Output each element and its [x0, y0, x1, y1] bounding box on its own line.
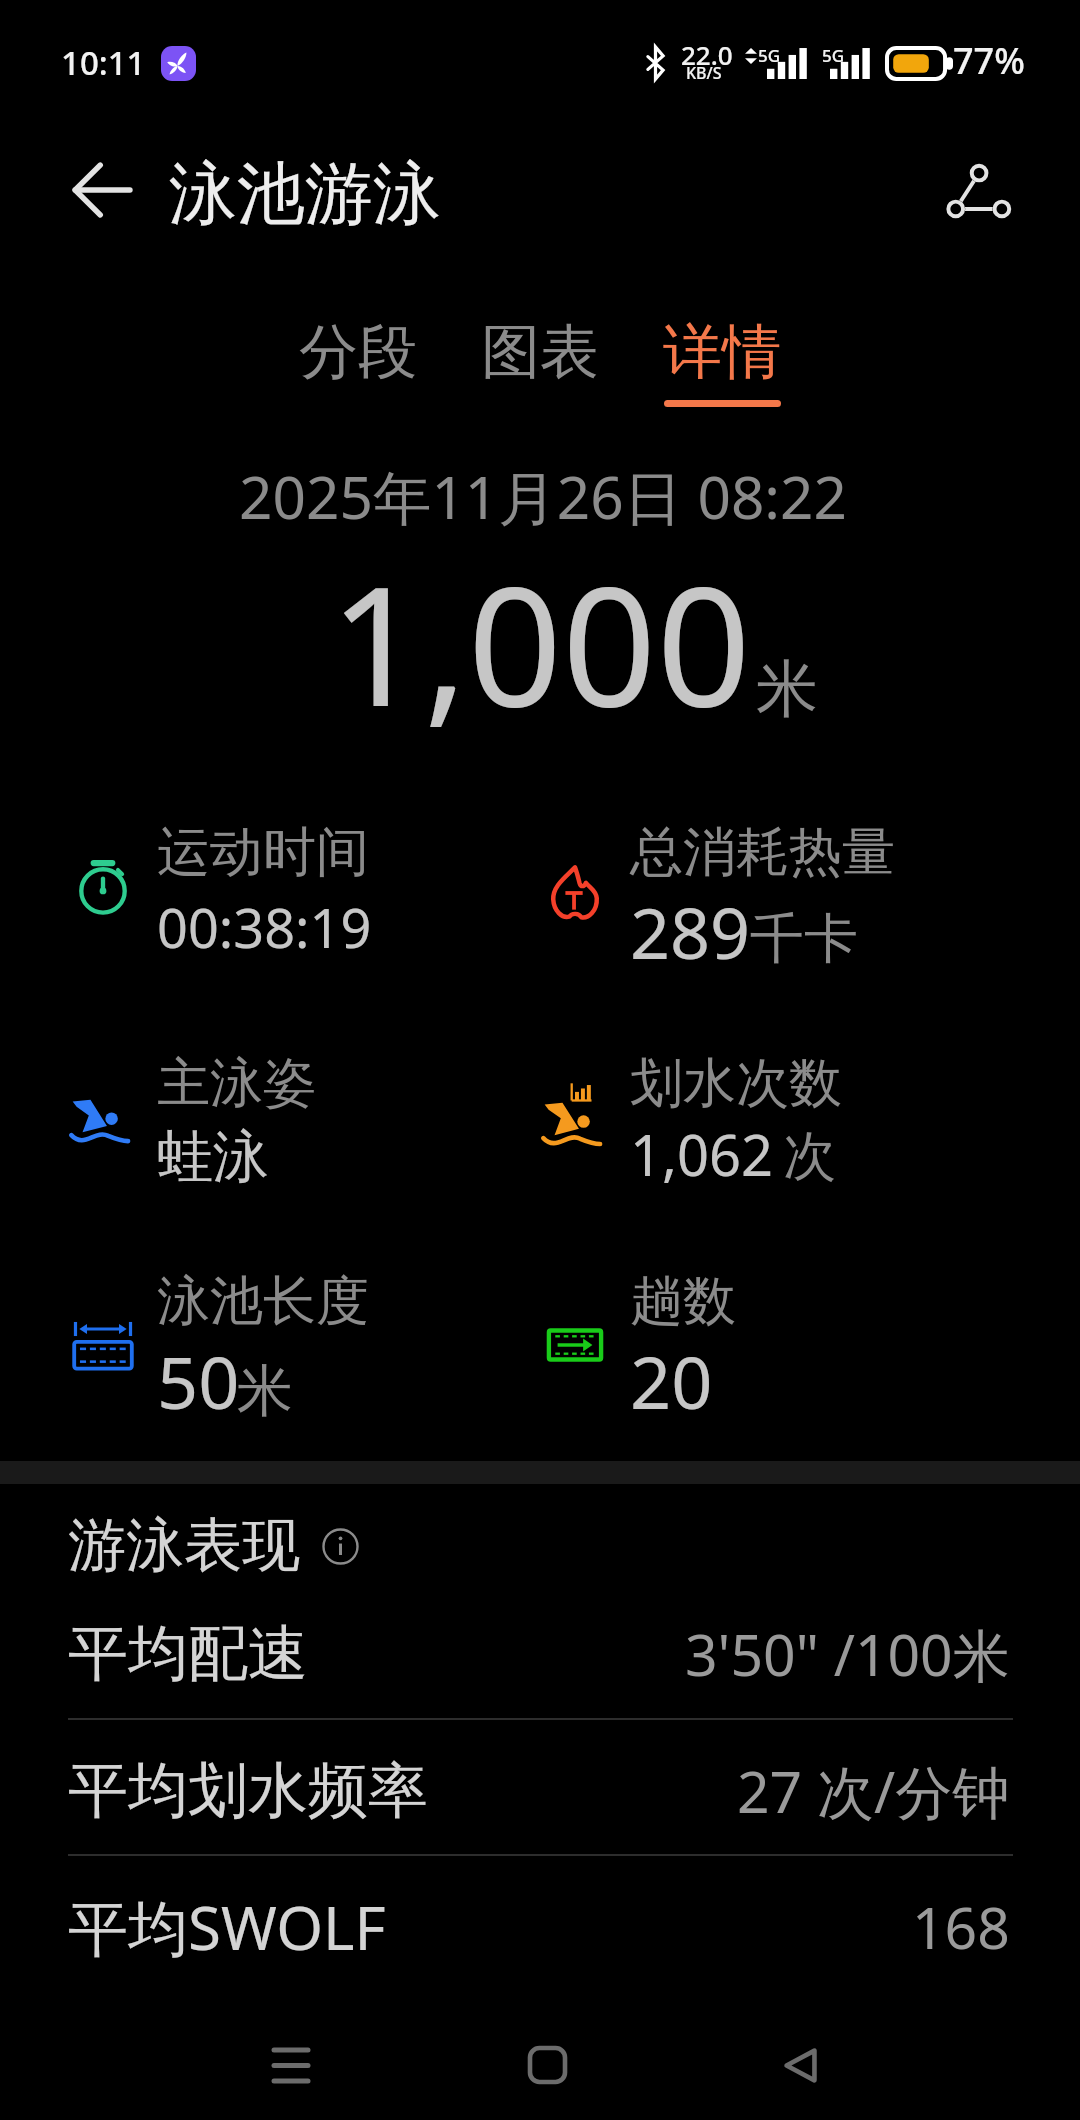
button[interactable]: 图表	[481, 315, 599, 407]
staticText: 50	[157, 1332, 240, 1430]
button[interactable]	[465, 1251, 925, 1441]
staticText: 平均划水频率	[68, 1753, 428, 1829]
staticText: 3'50" /100米	[685, 1615, 1010, 1693]
staticText: 平均配速	[68, 1616, 308, 1692]
staticText: 289	[630, 884, 751, 979]
staticText: 168	[912, 1888, 1010, 1966]
button[interactable]: Back	[58, 146, 146, 234]
staticText: 00:38:19	[157, 890, 372, 964]
staticText: 1,062	[630, 1116, 774, 1192]
staticText: 划水次数	[630, 1050, 842, 1117]
staticText: 1,000	[0, 530, 1080, 755]
staticText: 米	[756, 650, 818, 728]
staticText: 蛙泳	[157, 1122, 269, 1193]
button[interactable]	[465, 802, 925, 992]
staticText: 20	[630, 1332, 713, 1430]
staticText: 总消耗热量	[630, 819, 895, 886]
button[interactable]: 详情	[663, 315, 781, 407]
button[interactable]: 平均配速	[68, 1591, 1010, 1717]
staticText: 泳池游泳	[169, 152, 441, 238]
staticText: 22.0	[681, 37, 733, 72]
button[interactable]	[0, 1033, 453, 1223]
staticText: KB/S	[686, 62, 722, 84]
button[interactable]: Share	[932, 145, 1024, 237]
staticText: 27 次/分钟	[737, 1752, 1010, 1830]
button[interactable]: 游泳表现	[68, 1509, 359, 1582]
button[interactable]: 平均划水频率	[68, 1728, 1010, 1854]
button[interactable]	[0, 1251, 453, 1441]
staticText: 主泳姿	[157, 1050, 316, 1117]
staticText: 详情	[663, 315, 781, 389]
staticText: 游泳表现	[68, 1509, 300, 1582]
staticText: 5G	[758, 44, 781, 67]
button[interactable]: 平均SWOLF	[68, 1864, 1010, 1990]
staticText: 77%	[953, 36, 1025, 85]
staticText: 次	[783, 1123, 836, 1190]
button[interactable]	[0, 802, 453, 992]
staticText: 趟数	[630, 1268, 736, 1335]
staticText: 米	[237, 1356, 293, 1427]
staticText: 泳池长度	[157, 1268, 369, 1335]
staticText: 运动时间	[157, 819, 369, 886]
staticText: 图表	[481, 315, 599, 389]
button[interactable]: Recent apps	[243, 2017, 339, 2113]
staticText: 10:11	[61, 40, 146, 85]
button[interactable]: Back	[752, 2017, 848, 2113]
staticText: 分段	[299, 315, 417, 389]
button[interactable]: Home	[499, 2017, 595, 2113]
button[interactable]: 分段	[299, 315, 417, 407]
staticText: 5G	[822, 44, 845, 67]
staticText: 2025年11月26日 08:22	[3, 456, 1080, 536]
button[interactable]	[465, 1033, 925, 1223]
staticText: 平均SWOLF	[68, 1886, 386, 1968]
staticText: 千卡	[750, 905, 858, 973]
